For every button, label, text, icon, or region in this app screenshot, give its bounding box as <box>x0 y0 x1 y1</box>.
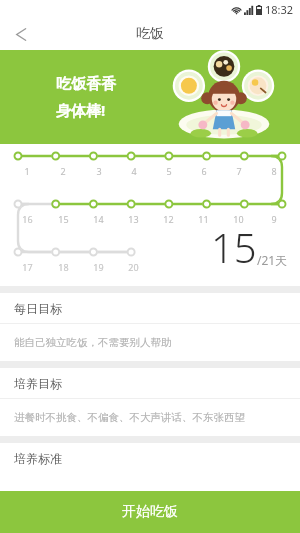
button[interactable]: 开始吃饭 <box>0 491 300 533</box>
staticText: 身体棒! <box>56 100 106 120</box>
staticText: 14 <box>93 213 104 225</box>
staticText: 3 <box>96 165 102 177</box>
staticText: 19 <box>93 261 104 273</box>
staticText: 2 <box>60 165 66 177</box>
staticText: 能自己独立吃饭，不需要别人帮助 <box>14 336 172 349</box>
button[interactable]: 每日目标 <box>0 293 300 323</box>
staticText: 1 <box>24 165 30 177</box>
staticText: 16 <box>22 213 33 225</box>
button[interactable]: 进餐时不挑食、不偏食、不大声讲话、不东张西望 <box>0 399 300 436</box>
staticText: 10 <box>233 213 244 225</box>
staticText: 18:32 <box>265 2 294 17</box>
staticText: 15 <box>58 213 69 225</box>
staticText: 培养目标 <box>14 376 62 391</box>
staticText: 11 <box>198 213 209 225</box>
staticText: /21天 <box>257 252 288 268</box>
staticText: 12 <box>163 213 174 225</box>
staticText: 7 <box>236 165 242 177</box>
staticText: 20 <box>128 261 139 273</box>
button[interactable]: 培养目标 <box>0 368 300 398</box>
button[interactable]: 能自己独立吃饭，不需要别人帮助 <box>0 324 300 361</box>
staticText: 6 <box>201 165 207 177</box>
staticText: 13 <box>128 213 139 225</box>
staticText: 17 <box>22 261 33 273</box>
staticText: 每日目标 <box>14 301 62 316</box>
staticText: 进餐时不挑食、不偏食、不大声讲话、不东张西望 <box>14 411 245 424</box>
staticText: 培养标准 <box>14 451 62 466</box>
staticText: 8 <box>271 165 277 177</box>
button[interactable]: 培养标准 <box>0 443 300 473</box>
staticText: 9 <box>271 213 277 225</box>
staticText: 吃饭香香 <box>56 75 116 94</box>
button[interactable]: Back <box>0 18 42 50</box>
staticText: 15 <box>211 220 257 274</box>
staticText: 5 <box>166 165 172 177</box>
staticText: 4 <box>131 165 137 177</box>
staticText: 18 <box>58 261 69 273</box>
staticText: 吃饭 <box>136 25 164 43</box>
staticText: 开始吃饭 <box>122 503 178 521</box>
